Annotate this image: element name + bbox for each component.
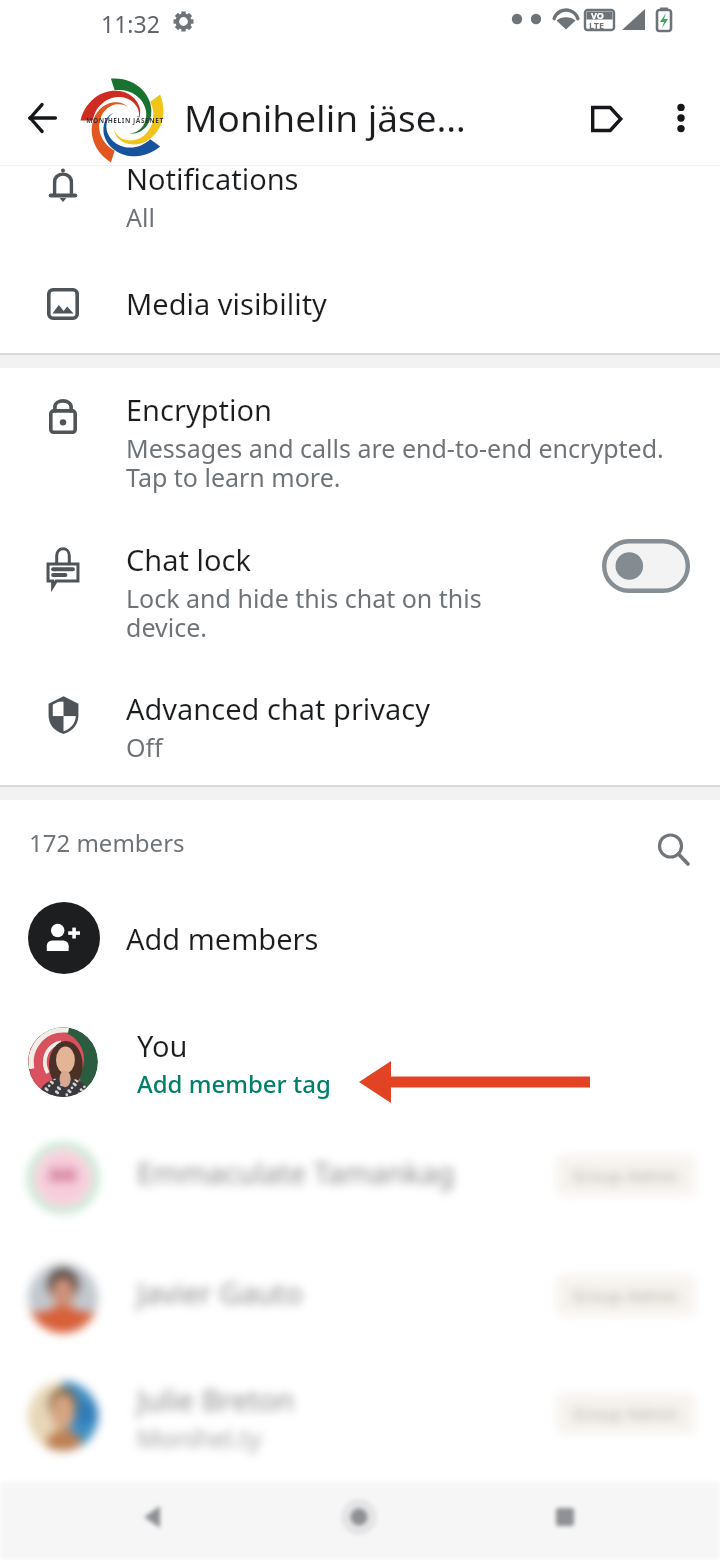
staticText: Add member tag bbox=[137, 1067, 331, 1100]
button[interactable]: Add members bbox=[0, 890, 720, 986]
staticText: Lock and hide this chat on this device. bbox=[126, 581, 482, 644]
button[interactable]: Encryption bbox=[0, 369, 720, 512]
button[interactable]: Back bbox=[112, 1482, 208, 1552]
staticText: Media visibility bbox=[126, 284, 327, 323]
staticText: Add members bbox=[126, 919, 319, 958]
button[interactable]: Javier Gauto bbox=[0, 1246, 720, 1350]
button[interactable]: Recent apps bbox=[517, 1482, 613, 1552]
staticText: VO bbox=[591, 9, 604, 21]
staticText: Emmaculate Tamankag bbox=[137, 1153, 455, 1192]
staticText: Messages and calls are end-to-end encryp… bbox=[126, 431, 664, 494]
button[interactable]: Search bbox=[636, 812, 712, 888]
staticText: MONIHELIN JÄSENET bbox=[86, 116, 164, 125]
staticText: Off bbox=[126, 730, 163, 764]
button[interactable]: Notifications bbox=[0, 140, 720, 265]
button[interactable]: Advanced chat privacy bbox=[0, 655, 720, 785]
staticText: Group Admin bbox=[572, 1402, 679, 1425]
staticText: Notifications bbox=[126, 159, 299, 198]
staticText: 172 members bbox=[29, 826, 185, 859]
button[interactable]: Julie Breton bbox=[0, 1364, 720, 1468]
staticText: Chat lock bbox=[126, 540, 251, 579]
button[interactable]: Home bbox=[311, 1482, 407, 1552]
button[interactable]: Emmaculate Tamankag bbox=[0, 1126, 720, 1230]
staticText: Julie Breton bbox=[137, 1380, 295, 1419]
button[interactable]: More options bbox=[641, 71, 720, 165]
staticText: 11:32 bbox=[101, 8, 160, 39]
staticText: Monihelin jäse… bbox=[184, 92, 466, 142]
button[interactable]: You bbox=[0, 1010, 720, 1114]
staticText: Monihel.ty bbox=[137, 1421, 262, 1455]
staticText: Encryption bbox=[126, 390, 272, 429]
staticText: You bbox=[137, 1026, 188, 1065]
staticText: Javier Gauto bbox=[137, 1273, 303, 1312]
button[interactable]: Chat lock bbox=[0, 512, 720, 655]
button[interactable]: Media visibility bbox=[0, 265, 720, 353]
button[interactable]: Back bbox=[0, 71, 84, 165]
staticText: Group Admin bbox=[572, 1284, 679, 1307]
staticText: Group Admin bbox=[572, 1164, 679, 1187]
staticText: All bbox=[126, 200, 155, 234]
staticText: Advanced chat privacy bbox=[126, 689, 431, 728]
button[interactable]: Labels bbox=[559, 72, 653, 166]
button[interactable]: Chat lock toggle, off bbox=[602, 539, 691, 594]
staticText: LTE bbox=[589, 19, 605, 31]
